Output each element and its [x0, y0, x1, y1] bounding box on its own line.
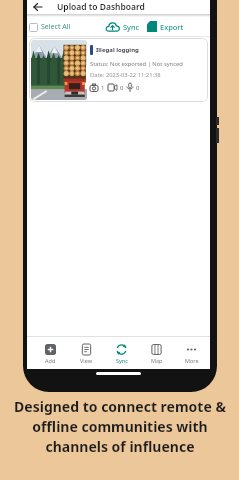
button[interactable]: Illegal logging [29, 38, 208, 102]
button[interactable]: Add [32, 337, 68, 369]
button[interactable]: Export [147, 21, 184, 32]
button[interactable] [34, 3, 42, 11]
button[interactable]: Sync [105, 21, 140, 33]
button[interactable]: Select All [29, 22, 71, 32]
staticText: Status: Not exported | Not synced [90, 60, 183, 68]
staticText: 0 [120, 84, 124, 92]
staticText: 1 [101, 84, 105, 92]
staticText: Upload to Dashboard [57, 1, 145, 13]
staticText: View [80, 357, 93, 364]
staticText: Add [45, 357, 56, 364]
staticText: 0 [136, 84, 140, 92]
staticText: Map [151, 357, 163, 364]
staticText: Select All [41, 22, 71, 32]
button[interactable]: Map [139, 337, 174, 369]
staticText: Date: 2023-03-22 11:21:38 [90, 71, 161, 79]
button[interactable]: Sync [104, 337, 139, 369]
button[interactable]: View [68, 337, 104, 369]
staticText: Illegal logging [96, 46, 139, 54]
staticText: More [185, 357, 199, 364]
staticText: Sync [116, 357, 128, 364]
button[interactable]: More [174, 337, 209, 369]
staticText: Export [160, 22, 184, 32]
staticText: Designed to connect remote & offline com… [14, 397, 226, 456]
staticText: Sync [123, 22, 140, 32]
